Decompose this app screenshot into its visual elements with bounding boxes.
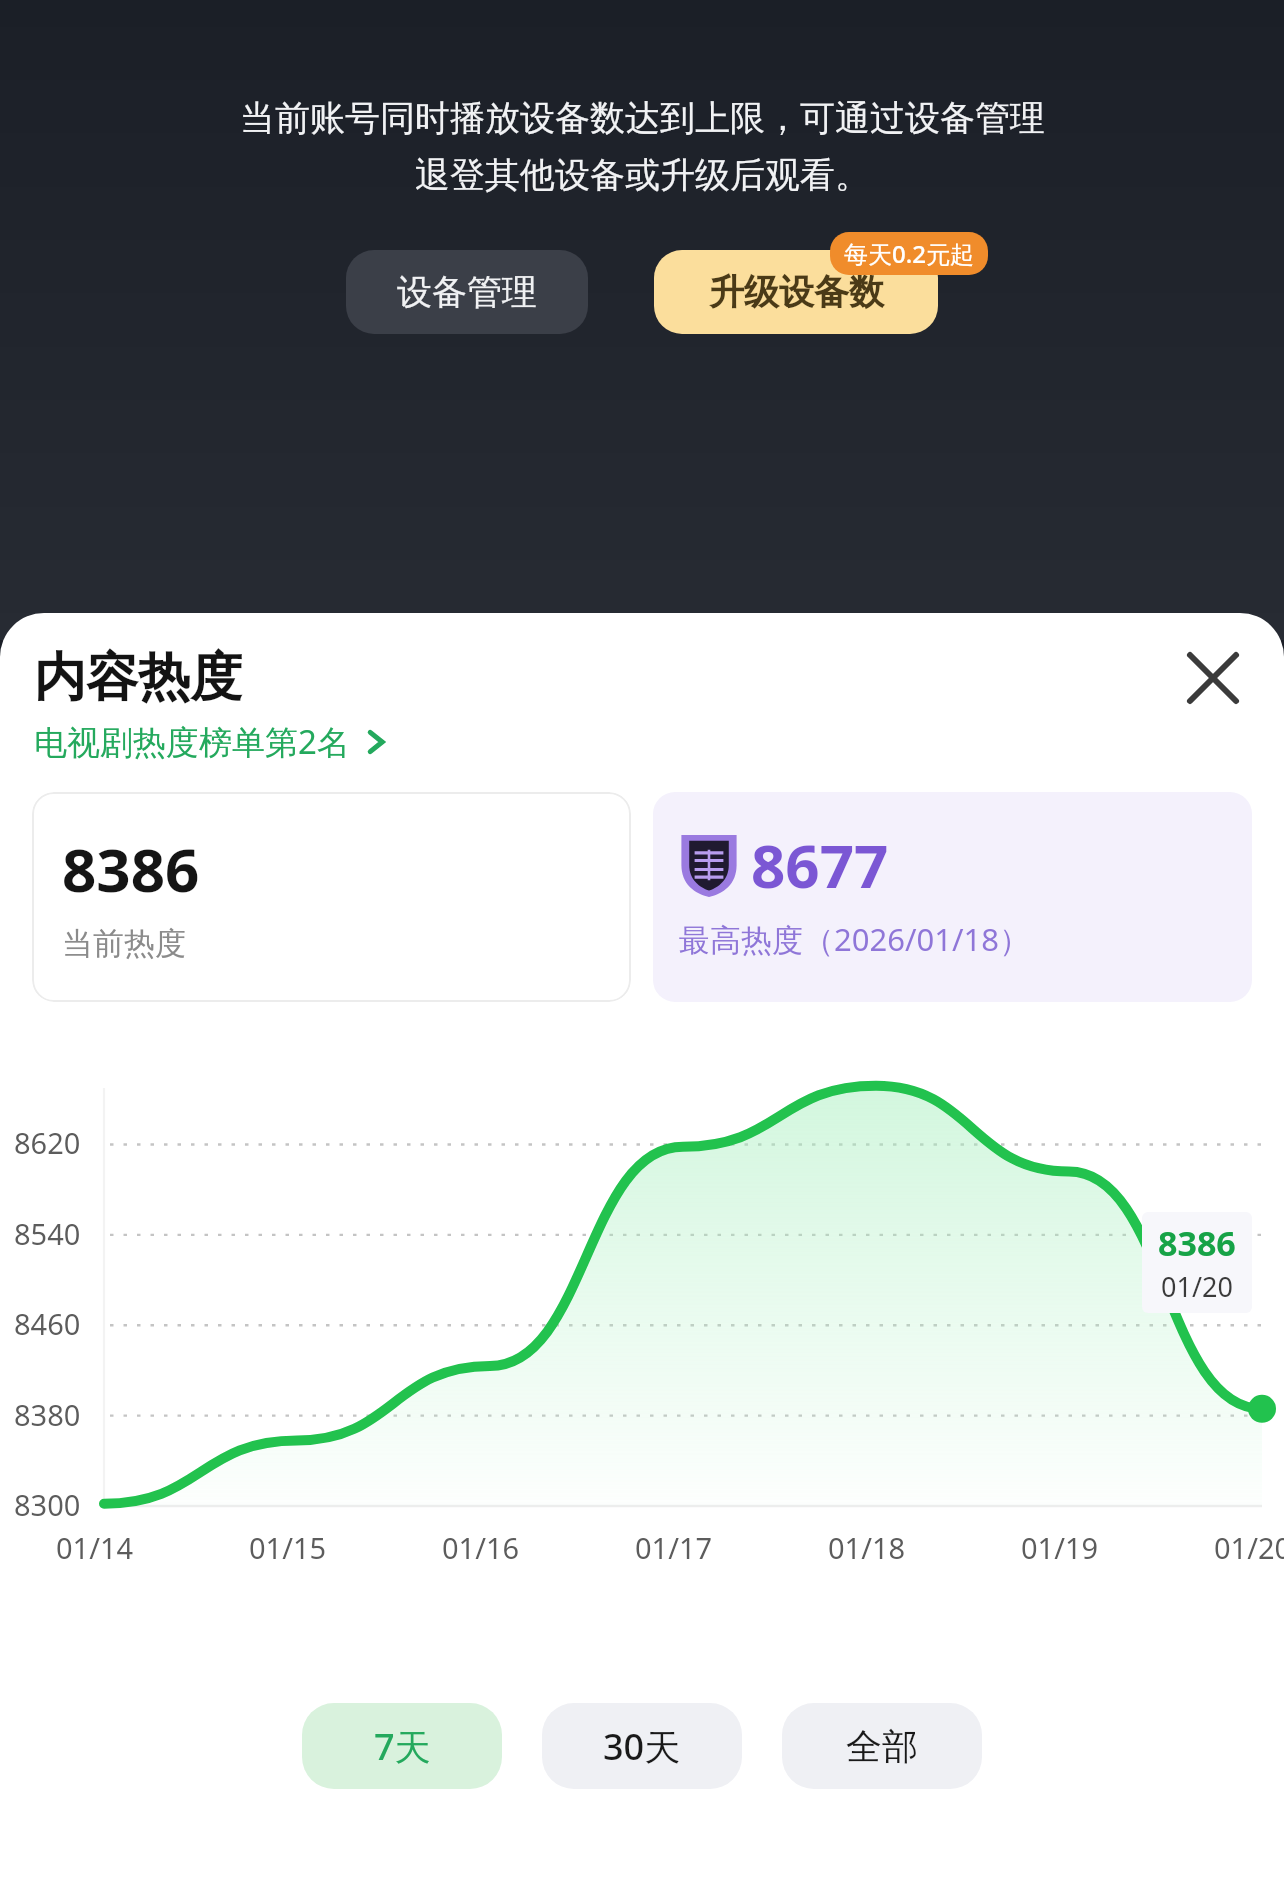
staticText: 全部 <box>846 1724 918 1769</box>
staticText: 01/15 <box>249 1528 327 1567</box>
staticText: 升级设备数 <box>709 270 884 314</box>
staticText: 当前热度 <box>62 924 186 963</box>
staticText: 8380 <box>14 1395 81 1434</box>
staticText: 最高热度（2026/01/18） <box>679 918 1030 960</box>
staticText: 7天 <box>374 1722 431 1771</box>
staticText: 01/20 <box>1214 1528 1284 1567</box>
staticText: 01/20 <box>1161 1268 1233 1305</box>
staticText: 30天 <box>603 1722 681 1771</box>
staticText: 8386 <box>1158 1220 1236 1266</box>
button[interactable]: 8386 <box>32 792 631 1002</box>
staticText: 01/18 <box>828 1528 906 1567</box>
staticText: 内容热度 <box>34 645 242 711</box>
staticText: 01/16 <box>442 1528 520 1567</box>
staticText: 8386 <box>62 828 200 910</box>
staticText: 电视剧热度榜单第2名 <box>34 719 350 764</box>
staticText: 01/14 <box>56 1528 134 1567</box>
button[interactable]: 关闭 <box>1174 639 1252 717</box>
staticText: 设备管理 <box>397 270 537 314</box>
button[interactable]: 升级设备数 <box>654 250 938 334</box>
staticText: 8300 <box>14 1485 81 1524</box>
staticText: 8620 <box>14 1123 81 1162</box>
button[interactable]: 7天 <box>302 1703 502 1789</box>
staticText: 每天0.2元起 <box>844 237 974 270</box>
button[interactable]: 8677 <box>653 792 1252 1002</box>
staticText: 8677 <box>751 824 889 906</box>
button[interactable]: 设备管理 <box>346 250 588 334</box>
staticText: 8540 <box>14 1214 81 1253</box>
staticText: 01/17 <box>635 1528 713 1567</box>
staticText: 当前账号同时播放设备数达到上限，可通过设备管理 退登其他设备或升级后观看。 <box>240 96 1045 198</box>
button[interactable]: 30天 <box>542 1703 742 1789</box>
button[interactable]: 全部 <box>782 1703 982 1789</box>
staticText: 8460 <box>14 1304 81 1343</box>
staticText: 01/19 <box>1021 1528 1099 1567</box>
button[interactable]: 电视剧热度榜单第2名 <box>32 717 390 766</box>
